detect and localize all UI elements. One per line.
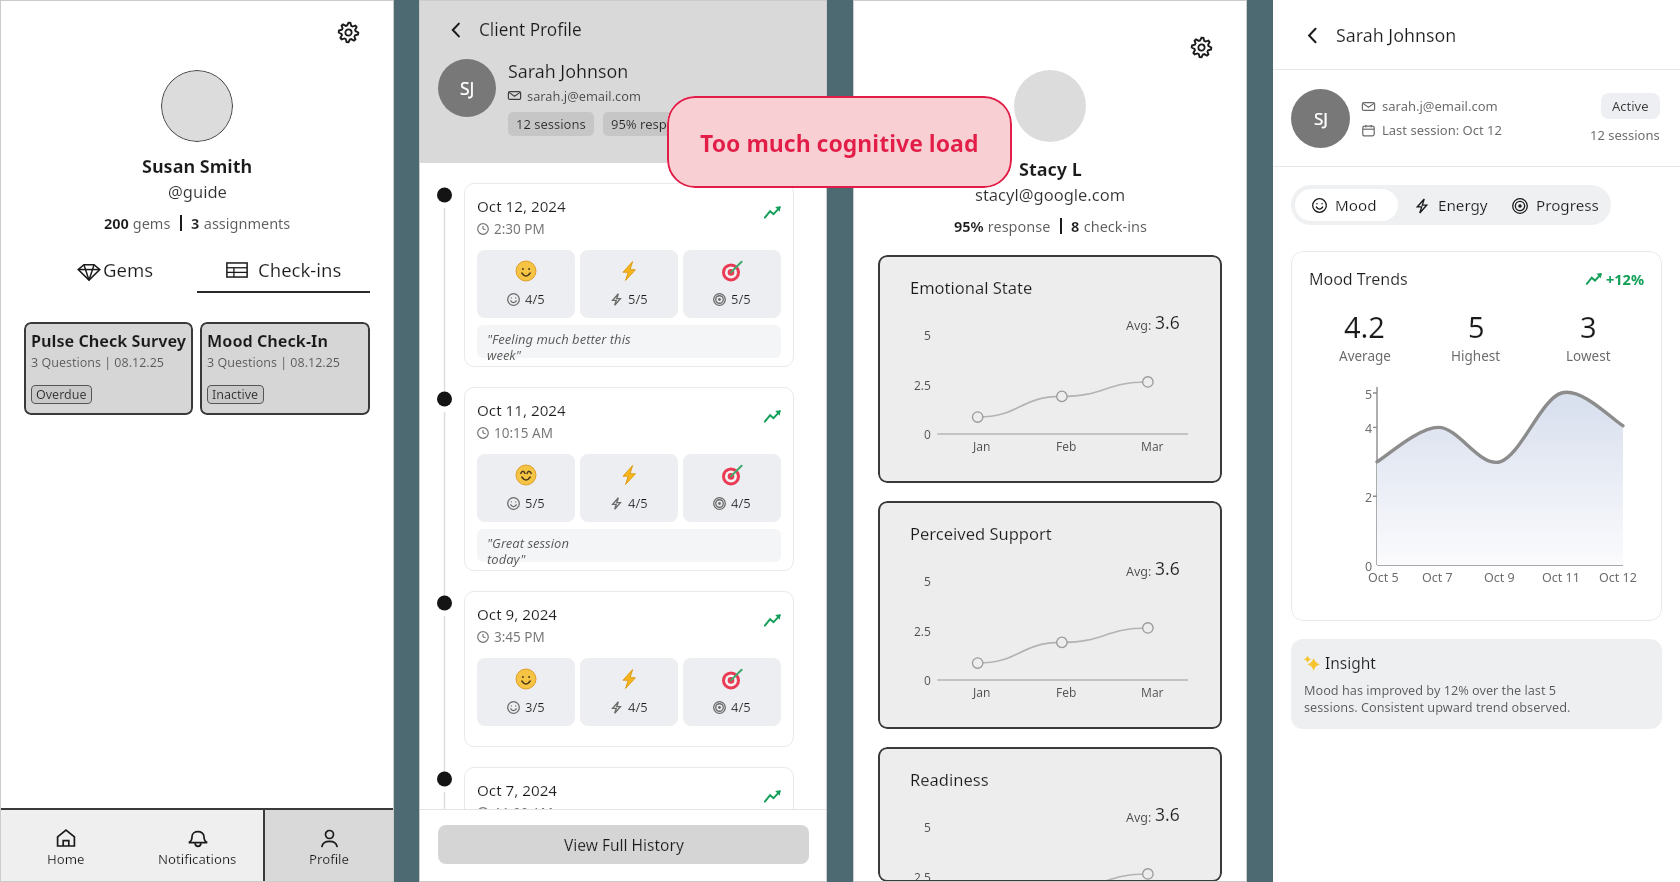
staticText: Avg:	[1126, 563, 1155, 580]
staticText: assignments	[200, 213, 291, 233]
staticText: +12%	[1606, 269, 1644, 289]
staticText: Progress	[1536, 195, 1599, 216]
button[interactable]: Insight	[1291, 639, 1662, 729]
staticText: Stacy L	[1019, 157, 1082, 182]
staticText: 0	[924, 426, 931, 442]
staticText: 3	[191, 213, 200, 233]
staticText: Mood Trends	[1309, 268, 1408, 290]
staticText: 4/5	[525, 290, 545, 308]
button[interactable]: Mood Check-In	[200, 322, 370, 415]
staticText: 3.6	[1155, 802, 1180, 826]
staticText: Energy	[1438, 195, 1488, 216]
button[interactable]: Mood	[1295, 189, 1398, 221]
staticText: Perceived Support	[910, 522, 1052, 544]
staticText: Client Profile	[479, 18, 582, 41]
staticText: 200	[104, 213, 129, 233]
staticText: Oct 9, 2024	[477, 604, 558, 625]
staticText: Avg:	[1126, 317, 1155, 334]
staticText: 3 Questions | 08.12.25	[31, 354, 164, 371]
button[interactable]: Check-ins	[197, 257, 370, 293]
button[interactable]: Settings	[1189, 35, 1213, 59]
staticText: Jan	[973, 684, 991, 700]
staticText: 3	[1580, 307, 1597, 346]
button[interactable]: Oct 7, 2024	[464, 767, 794, 809]
staticText: Average	[1339, 347, 1391, 365]
staticText: Notifications	[158, 850, 237, 868]
staticText: 5	[924, 327, 931, 343]
staticText: 3/5	[525, 698, 545, 716]
staticText: Inactive	[212, 386, 259, 403]
staticText: Emotional State	[910, 276, 1033, 298]
staticText: response	[984, 216, 1051, 236]
staticText: Mar	[1141, 684, 1164, 700]
button[interactable]: Energy	[1398, 189, 1496, 221]
button[interactable]: View Full History	[438, 825, 809, 864]
button[interactable]: Gems	[24, 257, 197, 293]
staticText: Too much cognitive load	[700, 127, 979, 158]
staticText: Profile	[309, 850, 349, 868]
staticText: 12 sessions	[516, 115, 586, 133]
staticText: Oct 9	[1484, 569, 1515, 586]
staticText: Oct 12	[1599, 569, 1637, 586]
staticText: 3:45 PM	[494, 628, 545, 646]
button[interactable]: Back	[1300, 23, 1324, 47]
button[interactable]: Settings	[336, 20, 360, 44]
staticText: 4/5	[628, 698, 648, 716]
staticText: Overdue	[36, 386, 87, 403]
staticText: Home	[47, 850, 85, 868]
staticText: @guide	[168, 180, 227, 202]
staticText: "Feeling much better this week"	[487, 330, 631, 363]
staticText: Sarah Johnson	[1336, 23, 1457, 47]
button[interactable]: Mood Trends	[1291, 251, 1662, 621]
staticText: 5	[924, 819, 931, 835]
staticText: 4.2	[1344, 307, 1385, 346]
staticText: 2.5	[914, 377, 931, 393]
button[interactable]: Readiness	[878, 747, 1222, 882]
staticText: Oct 11, 2024	[477, 400, 566, 421]
staticText: Insight	[1325, 652, 1376, 673]
button[interactable]: Oct 9, 2024	[464, 591, 794, 747]
staticText: Mar	[1141, 438, 1164, 454]
button[interactable]: Profile	[263, 810, 394, 882]
staticText: 0	[1365, 558, 1373, 575]
staticText: 95% response	[611, 115, 697, 133]
staticText: View Full History	[564, 834, 684, 855]
button[interactable]: Back	[444, 18, 468, 42]
staticText: SJ	[460, 76, 475, 100]
staticText: "Great session today"	[487, 534, 569, 567]
staticText: Pulse Check Survey	[31, 330, 187, 352]
staticText: 3.6	[1155, 556, 1180, 580]
staticText: sarah.j@email.com	[527, 87, 641, 104]
staticText: Oct 7	[1422, 569, 1453, 586]
button[interactable]: Home	[0, 810, 132, 882]
staticText: 4/5	[628, 494, 648, 512]
staticText: Mood	[1335, 195, 1377, 216]
button[interactable]: Pulse Check Survey	[24, 322, 193, 415]
button[interactable]: Perceived Support	[878, 501, 1222, 729]
staticText: 0	[924, 672, 931, 688]
staticText: check-ins	[1080, 216, 1147, 236]
staticText: Mood Check-In	[207, 330, 328, 352]
staticText: Sarah Johnson	[508, 59, 629, 83]
button[interactable]: Progress	[1496, 189, 1607, 221]
staticText: 5	[924, 573, 931, 589]
button[interactable]: Notifications	[132, 810, 263, 882]
staticText: 5/5	[731, 290, 751, 308]
staticText: Lowest	[1566, 347, 1611, 365]
staticText: 5	[1468, 307, 1485, 346]
staticText: Oct 7, 2024	[477, 780, 558, 801]
staticText: 3 Questions | 08.12.25	[207, 354, 340, 371]
staticText: Readiness	[910, 768, 989, 790]
button[interactable]: Oct 11, 2024	[464, 387, 794, 571]
staticText: Jan	[973, 438, 991, 454]
staticText: Oct 11	[1542, 569, 1580, 586]
staticText: 10:15 AM	[494, 424, 553, 442]
button[interactable]: Emotional State	[878, 255, 1222, 483]
staticText: 2.5	[914, 869, 931, 882]
button[interactable]: Oct 12, 2024	[464, 183, 794, 367]
staticText: 2	[1365, 489, 1373, 506]
staticText: Last session: Oct 12	[1382, 121, 1502, 139]
staticText: 3.6	[1155, 310, 1180, 334]
staticText: sarah.j@email.com	[1382, 97, 1498, 115]
staticText: Mood has improved by 12% over the last 5…	[1304, 681, 1571, 716]
